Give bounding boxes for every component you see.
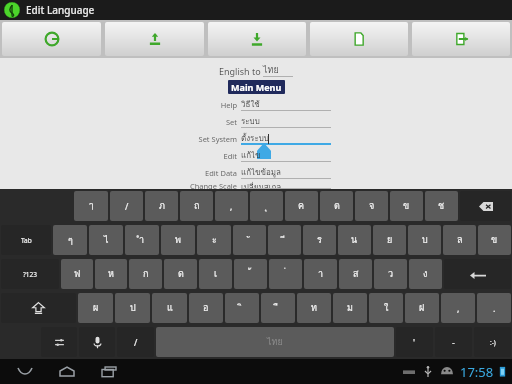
button[interactable]: ั [233, 225, 266, 255]
button[interactable]: ้ [234, 259, 267, 289]
button[interactable]: / [117, 327, 154, 357]
button[interactable]: Change Scale [181, 181, 331, 189]
button[interactable]: Main Menu [231, 81, 282, 93]
staticText: า [318, 267, 324, 281]
button[interactable]: ่ [269, 259, 302, 289]
button[interactable]: Set [181, 115, 331, 128]
button[interactable]: Edit [181, 149, 331, 162]
button[interactable]: ข [478, 225, 511, 255]
button[interactable]: ข [390, 191, 423, 221]
button[interactable]: ฝ [405, 293, 439, 323]
button[interactable]: ิ [225, 293, 259, 323]
button[interactable]: ห [95, 259, 127, 289]
staticText: เปลี่ยนสเกล [241, 181, 282, 189]
staticText: ไทย [263, 63, 279, 77]
button[interactable]: Enter [444, 259, 511, 289]
button[interactable]: - [435, 327, 472, 357]
staticText: ด [178, 267, 184, 281]
button[interactable]: Set System [181, 132, 331, 145]
button[interactable]: Shift [1, 293, 76, 323]
button[interactable]: ป [115, 293, 150, 323]
staticText: ช [438, 199, 445, 213]
button[interactable]: ี [268, 225, 301, 255]
staticText: Edit Data [181, 168, 237, 178]
button[interactable]: ด [164, 259, 197, 289]
staticText: ะ [212, 233, 217, 247]
button[interactable]: Settings [41, 327, 77, 357]
button[interactable]: า [304, 259, 337, 289]
button[interactable]: ท [297, 293, 331, 323]
button[interactable]: ะ [197, 225, 231, 255]
button[interactable]: ต [320, 191, 353, 221]
button[interactable]: Refresh [2, 22, 101, 56]
button[interactable]: เ [199, 259, 232, 289]
staticText: ฝ [419, 301, 425, 315]
button[interactable]: ย [373, 225, 406, 255]
button[interactable]: Edit Data [181, 166, 331, 179]
button[interactable]: ๆ [53, 225, 87, 255]
button[interactable]: ุ [250, 191, 283, 221]
button[interactable]: พ [161, 225, 195, 255]
button[interactable]: ผ [78, 293, 113, 323]
button[interactable]: ง [409, 259, 442, 289]
button[interactable]: ไ [89, 225, 123, 255]
button[interactable]: Export [412, 22, 510, 56]
staticText: ข [491, 233, 498, 247]
button[interactable]: ช [425, 191, 458, 221]
button[interactable]: ถ [180, 191, 213, 221]
button[interactable]: บ [408, 225, 441, 255]
staticText: ป [130, 301, 136, 315]
button[interactable]: ' [396, 327, 433, 357]
button[interactable]: จ [355, 191, 388, 221]
staticText: ม [347, 301, 353, 315]
button[interactable]: ก [129, 259, 162, 289]
button[interactable]: . [477, 293, 511, 323]
button[interactable]: ใ [369, 293, 403, 323]
staticText: / [125, 200, 129, 212]
button[interactable]: ร [303, 225, 336, 255]
button[interactable]: แ [152, 293, 187, 323]
button[interactable]: Download [208, 22, 306, 56]
button[interactable]: Backspace [460, 191, 511, 221]
staticText: , [457, 302, 460, 314]
button[interactable]: Upload [105, 22, 204, 56]
button[interactable]: / [110, 191, 143, 221]
button[interactable]: ค [285, 191, 318, 221]
button[interactable]: ำ [125, 225, 159, 255]
button[interactable]: อ [189, 293, 223, 323]
button[interactable]: New file [310, 22, 408, 56]
staticText: Set [181, 117, 237, 127]
button[interactable]: ส [339, 259, 372, 289]
staticText: ' [413, 336, 416, 348]
button[interactable]: App icon [4, 2, 20, 18]
button[interactable]: , [441, 293, 475, 323]
button[interactable]: น [338, 225, 371, 255]
button[interactable]: ม [333, 293, 367, 323]
staticText: Help [181, 100, 237, 110]
button[interactable]: ?123 [1, 259, 59, 289]
button[interactable]: ว [374, 259, 407, 289]
button[interactable]: Back [10, 359, 40, 384]
button[interactable]: ฟ [61, 259, 93, 289]
staticText: ฟ [74, 267, 81, 281]
button[interactable]: Home [52, 359, 82, 384]
staticText: ร [317, 233, 322, 247]
button[interactable]: ๅ [74, 191, 108, 221]
staticText: Set System [181, 134, 237, 144]
staticText: ก [143, 267, 149, 281]
button[interactable]: Recent apps [94, 359, 124, 384]
button[interactable]: Voice input [79, 327, 115, 357]
button[interactable]: :-) [474, 327, 511, 357]
button[interactable]: ล [443, 225, 476, 255]
staticText: Change Scale [181, 181, 237, 189]
button[interactable]: Tab [1, 225, 51, 255]
staticText: แก้ไขข้อมูล [241, 166, 281, 179]
button[interactable]: ภ [145, 191, 178, 221]
button[interactable]: ‚ [215, 191, 248, 221]
staticText: ใ [384, 301, 389, 315]
button[interactable]: Help [181, 98, 331, 111]
staticText: บ [422, 233, 428, 247]
staticText: ไ [104, 233, 109, 247]
button[interactable]: ื [261, 293, 295, 323]
